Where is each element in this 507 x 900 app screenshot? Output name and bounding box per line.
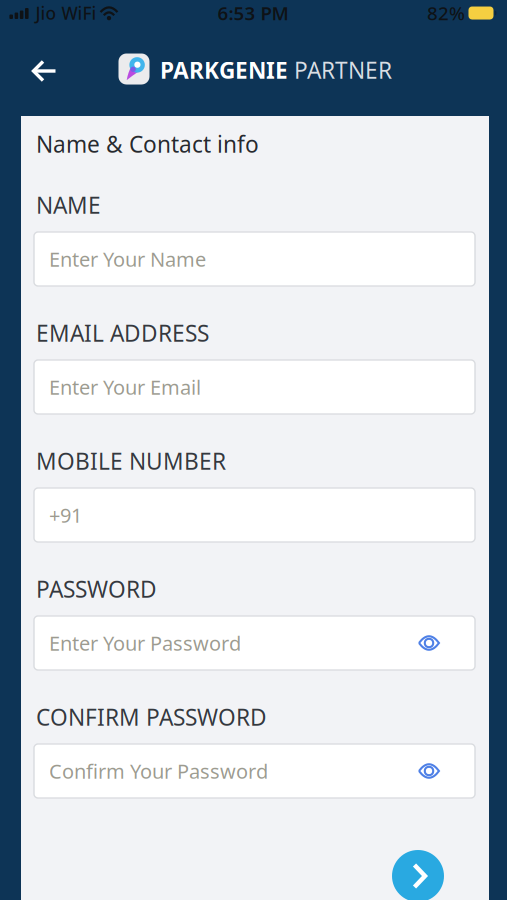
button[interactable]: Show confirm password — [412, 754, 446, 788]
textField[interactable]: Confirm Your Password — [49, 758, 475, 784]
staticText: 82% — [427, 1, 465, 25]
staticText: NAME — [36, 190, 101, 220]
staticText: Enter Your Email — [49, 374, 201, 400]
staticText: Jio WiFi — [35, 1, 96, 24]
textField[interactable]: Enter Your Email — [49, 374, 475, 400]
staticText: Enter Your Password — [49, 630, 241, 656]
staticText: EMAIL ADDRESS — [36, 318, 209, 348]
button[interactable]: Back — [22, 51, 66, 91]
textField[interactable]: +91 — [49, 502, 475, 528]
textField[interactable]: Enter Your Password — [49, 630, 475, 656]
staticText: CONFIRM PASSWORD — [36, 702, 267, 732]
staticText: Name & Contact info — [36, 129, 259, 159]
staticText: PASSWORD — [36, 574, 157, 604]
staticText: Enter Your Name — [49, 246, 206, 272]
staticText: Confirm Your Password — [49, 758, 268, 784]
staticText: MOBILE NUMBER — [36, 446, 226, 476]
button[interactable]: Show password — [412, 626, 446, 660]
staticText: PARTNER — [294, 55, 392, 85]
staticText: PARKGENIE — [160, 55, 288, 85]
staticText: 6:53 PM — [217, 1, 288, 25]
button[interactable]: Next — [392, 850, 444, 900]
textField[interactable]: Enter Your Name — [49, 246, 475, 272]
staticText: +91 — [49, 502, 82, 528]
